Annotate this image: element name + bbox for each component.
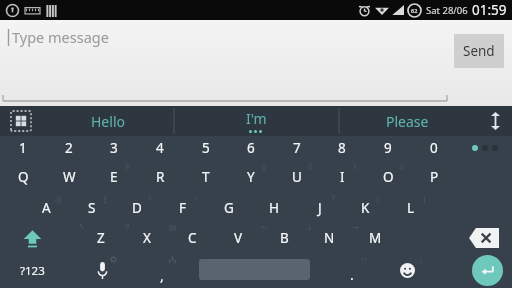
staticText: P [430,168,439,186]
staticText: Y [247,168,255,186]
button[interactable]: I'm [174,106,339,136]
staticText: 5 [202,139,210,157]
button[interactable]: ▤ [169,223,215,253]
button[interactable]: T [183,160,229,193]
staticText: Type message [12,27,109,47]
staticText: ▤ [169,223,177,232]
staticText: :-) [415,255,422,265]
button[interactable]: ↰ [78,223,124,253]
button[interactable]: Type message [8,27,448,89]
button[interactable]: 4 [137,136,183,160]
button[interactable]: Hello [42,106,174,136]
staticText: K [361,199,370,217]
button[interactable]: Expand suggestions [478,106,512,136]
staticText: 7 [293,139,301,157]
staticText: ↱ [124,223,131,232]
button[interactable]: ← [261,223,307,253]
button[interactable]: ↑ [297,193,343,223]
button[interactable]: · [215,223,261,253]
button[interactable]: W [46,160,92,193]
button[interactable]: 5 [183,136,229,160]
staticText: Z [97,229,105,247]
staticText: M [369,229,382,247]
staticText: ↰ [78,223,85,232]
staticText: B [280,229,289,247]
staticText: I'm [246,109,267,128]
button[interactable]: , [140,253,184,288]
staticText: 2 [65,139,73,157]
button[interactable]: → [352,223,398,253]
button[interactable]: £ [69,193,115,223]
button[interactable]: è [91,160,137,193]
staticText: 1 [19,139,27,157]
staticText: L [407,199,415,217]
staticText: Hello [91,112,125,131]
button[interactable]: ó [365,160,411,193]
staticText: C [188,229,197,247]
staticText: ↑ [330,194,337,203]
button[interactable]: ! [160,193,206,223]
button[interactable]: '!? [330,253,374,288]
button[interactable]: ) [388,193,434,223]
button[interactable]: 3 [91,136,137,160]
staticText: 3 [110,139,118,157]
staticText: E [110,168,118,186]
staticText: . [350,265,354,284]
button[interactable]: ' [251,193,297,223]
button[interactable]: Backspace [462,225,502,251]
button[interactable]: Emoji [385,253,429,288]
button[interactable]: Voice input [80,253,124,288]
button[interactable]: ( [342,193,388,223]
button[interactable]: 8 [319,136,365,160]
staticText: @ [55,194,63,205]
staticText: ( [377,194,380,205]
button[interactable]: 7 [274,136,320,160]
button[interactable]: Send [454,34,504,68]
staticText: Sat 28/06 [426,4,468,17]
staticText: X [143,229,151,247]
staticText: N [324,229,335,247]
button[interactable]: 6 [228,136,274,160]
button[interactable]: ? [114,193,160,223]
staticText: ī [354,161,357,172]
staticText: ǒ [308,161,313,172]
button[interactable]: R [137,160,183,193]
staticText: ó [399,161,404,172]
button[interactable]: Please [339,106,475,136]
button[interactable]: 2 [46,136,92,160]
staticText: V [234,229,243,247]
button[interactable]: Enter [472,255,503,286]
staticText: → [352,223,359,232]
staticText: 0 [430,139,438,157]
button[interactable]: 9 [365,136,411,160]
button[interactable]: ỳ [228,160,274,193]
button[interactable]: Shift [8,223,56,253]
button[interactable]: Keyboard options [0,106,42,136]
staticText: ! [195,194,198,205]
staticText: O [383,168,394,186]
button[interactable]: ǒ [274,160,320,193]
staticText: , [160,266,164,285]
staticText: J [318,199,322,217]
staticText: F [179,199,187,217]
staticText: 62 [411,7,418,14]
button[interactable]: ?123 [6,253,58,288]
button[interactable]: ↓ [306,223,352,253]
button[interactable]: ī [319,160,365,193]
staticText: '!? [360,255,367,265]
button[interactable]: ↱ [124,223,170,253]
button[interactable]: · [206,193,252,223]
staticText: ?123 [20,263,45,279]
button[interactable]: 1 [0,136,46,160]
button[interactable]: Q [0,160,46,193]
button[interactable]: 0 [411,136,457,160]
staticText: D [132,199,142,217]
button[interactable]: @ [23,193,69,223]
staticText: A [42,199,51,217]
staticText: 4 [156,139,164,157]
staticText: Please [386,112,429,131]
button[interactable]: P [411,160,457,193]
